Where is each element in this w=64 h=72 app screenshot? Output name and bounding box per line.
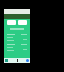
button[interactable] [7,34,27,41]
button[interactable] [18,20,27,25]
button[interactable]: Profile [26,59,29,62]
button[interactable] [7,20,16,25]
button[interactable] [7,44,27,51]
